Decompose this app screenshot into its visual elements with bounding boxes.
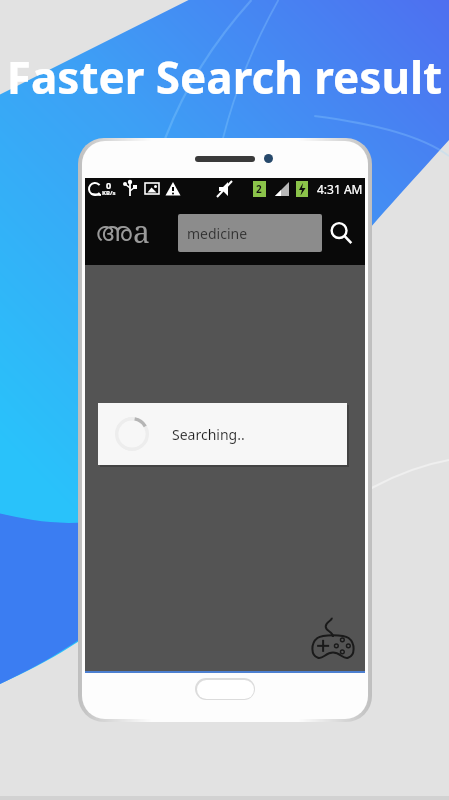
button[interactable]: Search [321, 213, 361, 253]
staticText: KB/s [102, 189, 116, 197]
staticText: Searching.. [172, 425, 245, 444]
staticText: a [133, 211, 150, 252]
staticText: 4:31 AM [317, 181, 363, 197]
button[interactable]: Games [307, 611, 359, 663]
button[interactable]: Searching.. [98, 403, 347, 465]
staticText: medicine [187, 224, 248, 243]
staticText: അ [95, 219, 132, 246]
staticText: Faster Search result [0, 47, 449, 107]
staticText: 0 [106, 179, 112, 191]
button[interactable]: അ [91, 206, 153, 259]
staticText: 2 [256, 182, 262, 196]
button[interactable]: medicine [178, 214, 322, 252]
